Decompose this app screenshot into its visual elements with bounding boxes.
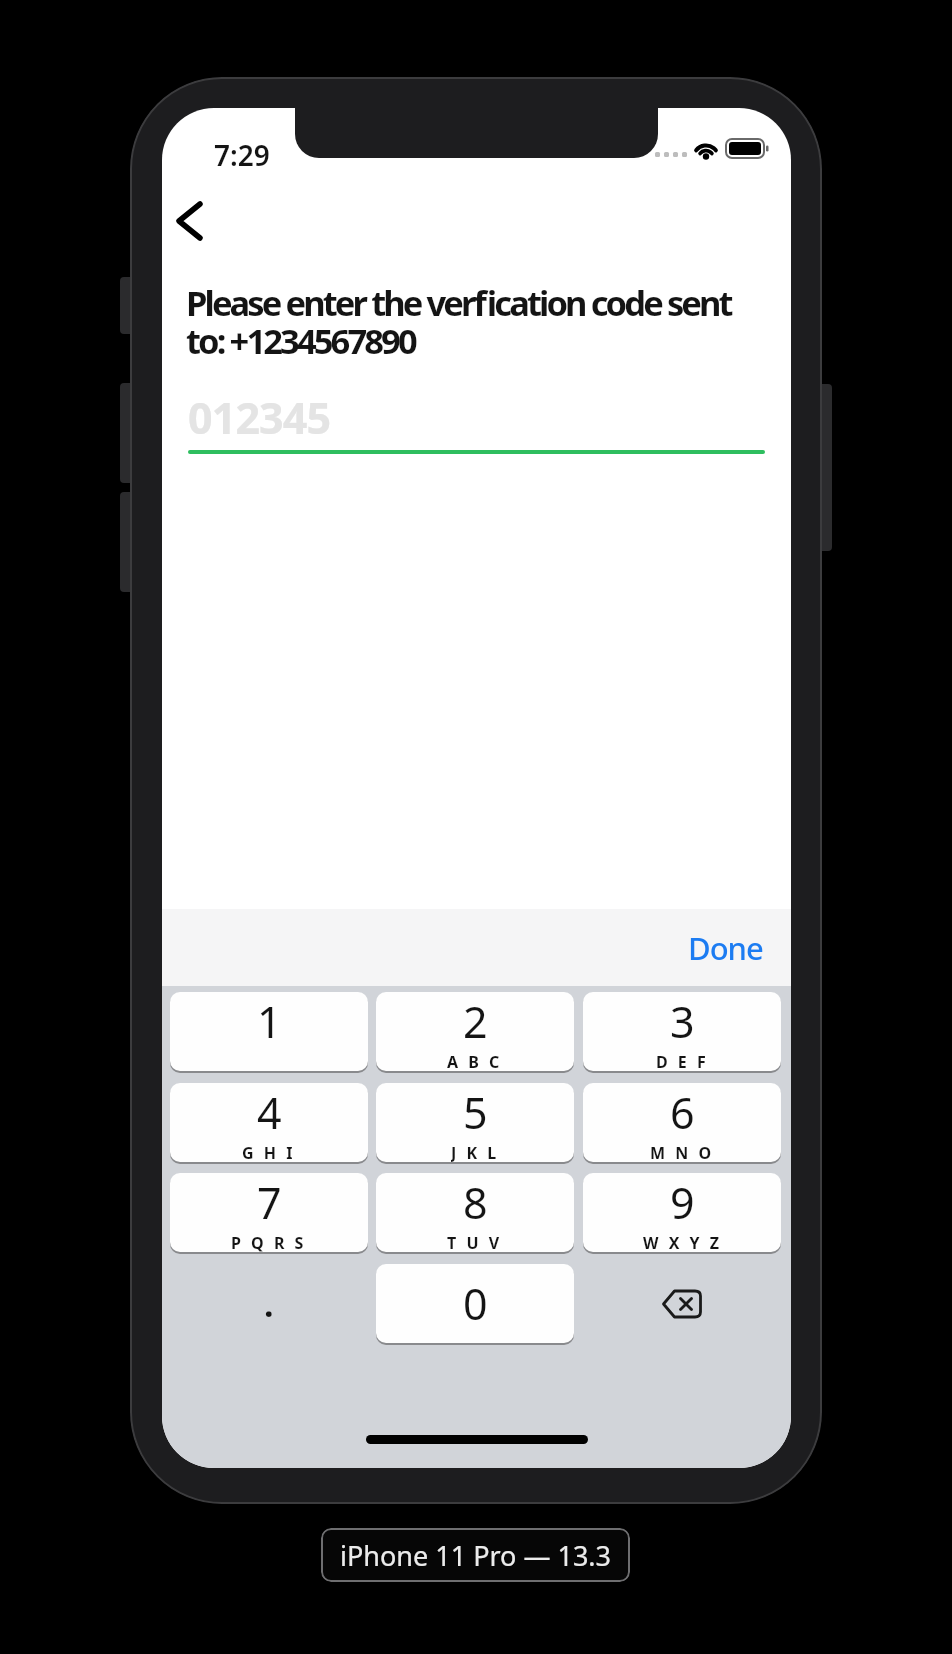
button[interactable]: Done bbox=[688, 927, 763, 969]
staticText: iPhone 11 Pro — 13.3 bbox=[340, 1537, 612, 1574]
button[interactable]: . bbox=[170, 1264, 368, 1343]
staticText: 6 bbox=[670, 1083, 695, 1142]
button[interactable]: 3 bbox=[583, 992, 781, 1071]
staticText: Done bbox=[688, 927, 763, 969]
staticText: 0 bbox=[463, 1274, 488, 1333]
staticText: 1 bbox=[257, 992, 282, 1051]
staticText: 7:29 bbox=[214, 136, 270, 174]
staticText: T U V bbox=[447, 1232, 503, 1252]
staticText: 012345 bbox=[188, 388, 331, 447]
staticText: 2 bbox=[463, 992, 488, 1051]
button[interactable]: 7 bbox=[170, 1173, 368, 1252]
button[interactable]: 1 bbox=[170, 992, 368, 1071]
staticText: Please enter the verfication code sent t… bbox=[186, 279, 731, 364]
staticText: J K L bbox=[451, 1142, 500, 1162]
staticText: 4 bbox=[257, 1083, 282, 1142]
staticText: G H I bbox=[242, 1142, 296, 1162]
staticText: 5 bbox=[463, 1083, 488, 1142]
button[interactable]: 4 bbox=[170, 1083, 368, 1162]
staticText: D E F bbox=[656, 1051, 709, 1071]
staticText: M N O bbox=[650, 1142, 715, 1162]
button[interactable] bbox=[583, 1264, 781, 1343]
staticText: 7 bbox=[257, 1173, 282, 1232]
staticText: W X Y Z bbox=[643, 1232, 722, 1252]
button[interactable]: 9 bbox=[583, 1173, 781, 1252]
button[interactable]: 5 bbox=[376, 1083, 574, 1162]
staticText: 8 bbox=[463, 1173, 488, 1232]
button[interactable]: 0 bbox=[376, 1264, 574, 1343]
staticText: A B C bbox=[447, 1051, 503, 1071]
staticText: 3 bbox=[670, 992, 695, 1051]
button[interactable]: 2 bbox=[376, 992, 574, 1071]
button[interactable]: 8 bbox=[376, 1173, 574, 1252]
button[interactable]: 6 bbox=[583, 1083, 781, 1162]
button[interactable] bbox=[168, 194, 212, 246]
staticText: . bbox=[264, 1281, 274, 1327]
staticText: P Q R S bbox=[231, 1232, 307, 1252]
staticText: 9 bbox=[670, 1173, 695, 1232]
